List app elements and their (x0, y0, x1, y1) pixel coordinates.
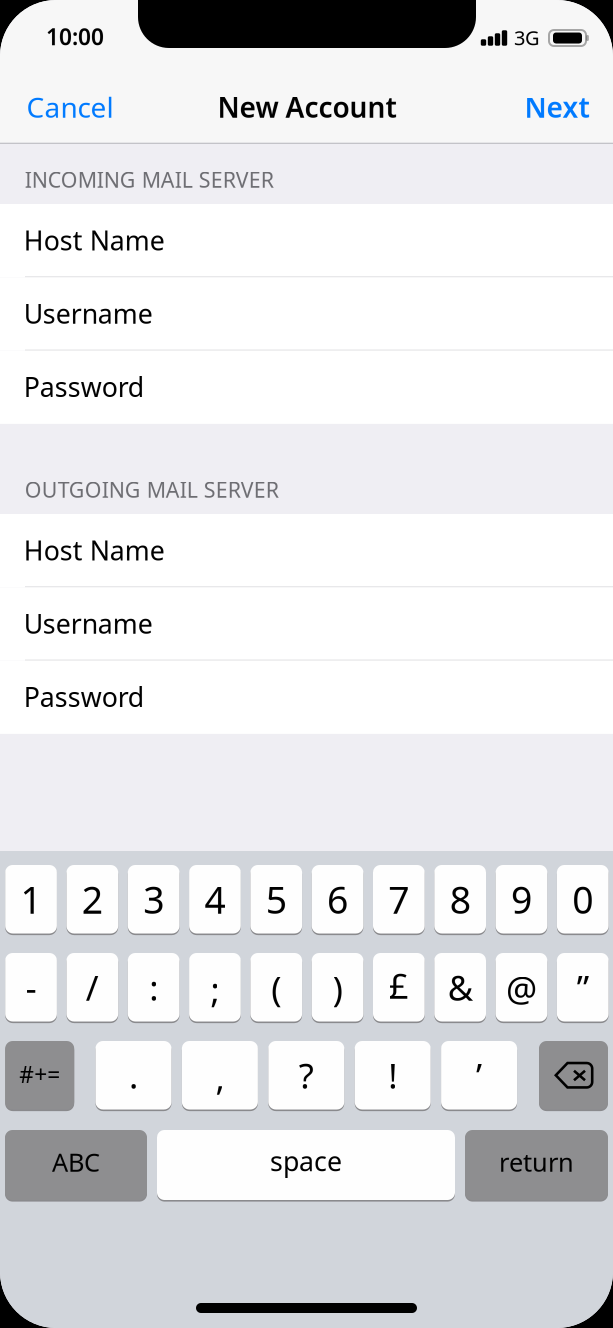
staticText: - (26, 964, 37, 1010)
button[interactable]: 9 (0, 0, 613, 1328)
button[interactable]: @ (0, 0, 613, 1328)
staticText: 4 (204, 874, 225, 924)
staticText: : (149, 964, 158, 1010)
button[interactable]: 3 (0, 0, 613, 1328)
button[interactable]: 6 (0, 0, 613, 1328)
staticText: 3 (143, 874, 164, 924)
button[interactable]: ABC (0, 0, 613, 1328)
button[interactable]: , (0, 0, 613, 1328)
staticText: ) (333, 965, 343, 1011)
button[interactable]: 2 (0, 0, 613, 1328)
button[interactable]: ) (0, 0, 613, 1328)
button[interactable]: #+= (0, 0, 613, 1328)
button[interactable]: Cancel (0, 0, 613, 1328)
button[interactable]: 0 (0, 0, 613, 1328)
staticText: Username (24, 296, 153, 331)
button[interactable]: 4 (0, 0, 613, 1328)
staticText: Host Name (24, 222, 165, 258)
button[interactable]: Delete (0, 0, 613, 1328)
button[interactable]: return (0, 0, 613, 1328)
staticText: , (215, 1054, 224, 1100)
staticText: 2 (82, 874, 103, 924)
button[interactable]: ; (0, 0, 613, 1328)
button[interactable]: . (0, 0, 613, 1328)
staticText: #+= (19, 1059, 60, 1089)
staticText: 3G (514, 24, 540, 51)
button[interactable]: Next (0, 0, 613, 1328)
button[interactable]: ? (0, 0, 613, 1328)
button[interactable]: - (0, 0, 613, 1328)
staticText: 9 (511, 874, 532, 924)
button[interactable]: : (0, 0, 613, 1328)
staticText: £ (389, 962, 409, 1008)
staticText: 7 (388, 874, 409, 924)
staticText: & (448, 964, 473, 1010)
staticText: ( (271, 965, 281, 1011)
staticText: @ (506, 965, 537, 1011)
staticText: 6 (327, 874, 348, 924)
staticText: Host Name (24, 532, 165, 568)
staticText: ; (210, 966, 219, 1012)
button[interactable]: / (0, 0, 613, 1328)
staticText: . (129, 1052, 138, 1098)
button[interactable]: 5 (0, 0, 613, 1328)
staticText: ’ (476, 1052, 482, 1098)
staticText: Cancel (26, 88, 113, 126)
staticText: INCOMING MAIL SERVER (25, 165, 274, 194)
staticText: Next (524, 88, 589, 126)
staticText: Password (24, 369, 144, 404)
staticText: 10:00 (46, 21, 104, 51)
staticText: 5 (266, 874, 287, 924)
staticText: New Account (217, 88, 396, 126)
button[interactable]: Password (0, 0, 613, 1328)
button[interactable]: 1 (0, 0, 613, 1328)
staticText: Password (24, 679, 144, 714)
button[interactable]: & (0, 0, 613, 1328)
button[interactable]: ( (0, 0, 613, 1328)
button[interactable]: space (0, 0, 613, 1328)
button[interactable]: ’ (0, 0, 613, 1328)
staticText: OUTGOING MAIL SERVER (25, 475, 279, 504)
staticText: ? (299, 1052, 314, 1098)
button[interactable]: ! (0, 0, 613, 1328)
staticText: return (499, 1145, 574, 1179)
button[interactable]: £ (0, 0, 613, 1328)
button[interactable]: Username (0, 0, 613, 1328)
staticText: Username (24, 606, 153, 641)
button[interactable]: 8 (0, 0, 613, 1328)
staticText: 0 (572, 874, 593, 924)
staticText: / (86, 964, 99, 1010)
staticText: 1 (21, 874, 42, 924)
staticText: ! (388, 1052, 397, 1098)
button[interactable]: 7 (0, 0, 613, 1328)
staticText: ABC (52, 1145, 100, 1179)
staticText: ” (577, 964, 589, 1010)
button[interactable]: Password (0, 0, 613, 1328)
button[interactable]: Host Name (0, 0, 613, 1328)
button[interactable]: ” (0, 0, 613, 1328)
staticText: space (270, 1143, 342, 1179)
staticText: 8 (450, 874, 471, 924)
button[interactable]: Host Name (0, 0, 613, 1328)
button[interactable]: Username (0, 0, 613, 1328)
